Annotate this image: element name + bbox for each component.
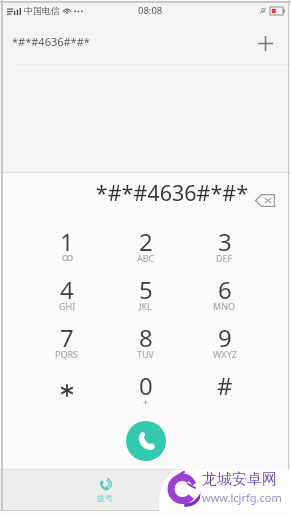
staticText: 08:08	[138, 4, 163, 17]
staticText: TUV	[137, 348, 154, 360]
button[interactable]: Delete	[250, 185, 280, 215]
button[interactable]	[28, 365, 106, 413]
button[interactable]: 4	[28, 269, 106, 317]
staticText: 2	[139, 225, 153, 258]
staticText: WXYZ	[213, 348, 237, 360]
staticText: www.lcjrfg.com	[202, 490, 282, 505]
button[interactable]: #	[185, 365, 264, 413]
button[interactable]: 2	[106, 221, 185, 269]
staticText: 1	[60, 225, 74, 258]
button[interactable]: 8	[106, 317, 185, 365]
staticText: 0	[139, 369, 153, 402]
button[interactable]: 1	[28, 221, 106, 269]
staticText: 中国电信	[24, 5, 60, 16]
staticText: PQRS	[55, 348, 79, 360]
staticText: +	[143, 396, 149, 408]
staticText: *#*#4636#*#*	[12, 34, 90, 49]
staticText: 8	[139, 321, 153, 354]
staticText: 拨号	[97, 493, 113, 503]
button[interactable]: 3	[185, 221, 264, 269]
staticText: 3	[218, 225, 232, 258]
staticText: #	[217, 369, 233, 402]
staticText: 9	[218, 321, 232, 354]
button[interactable]: Call	[126, 421, 166, 461]
staticText: 龙城安卓网	[202, 470, 277, 489]
button[interactable]: 5	[106, 269, 185, 317]
staticText: MNO	[213, 300, 236, 312]
staticText: *#*#4636#*#*	[12, 178, 248, 207]
staticText: 5	[139, 273, 153, 306]
button[interactable]: 7	[28, 317, 106, 365]
staticText: ABC	[137, 252, 155, 264]
staticText: 4	[60, 273, 74, 306]
staticText: GHI	[59, 300, 76, 312]
staticText: JKL	[139, 300, 152, 312]
staticText: 6	[218, 273, 232, 306]
button[interactable]: 6	[185, 269, 264, 317]
button[interactable]: 拨号	[85, 478, 125, 503]
button[interactable]: 0	[106, 365, 185, 413]
staticText: DEF	[216, 252, 233, 264]
button[interactable]: Add	[249, 26, 281, 58]
button[interactable]: 9	[185, 317, 264, 365]
staticText: 7	[60, 321, 74, 354]
